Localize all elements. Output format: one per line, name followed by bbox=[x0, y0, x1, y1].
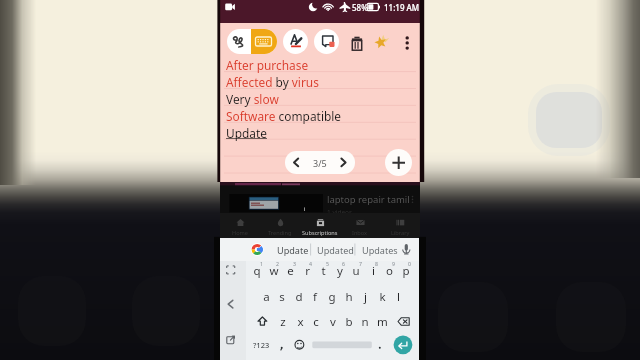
staticText: Home bbox=[232, 229, 248, 237]
staticText: p bbox=[402, 263, 410, 279]
button[interactable]: y bbox=[332, 263, 348, 279]
button[interactable]: Home bbox=[220, 213, 260, 238]
button[interactable]: n bbox=[357, 314, 373, 330]
button[interactable]: g bbox=[324, 289, 340, 305]
button[interactable]: Floating keyboard bbox=[223, 331, 239, 347]
staticText: j bbox=[364, 289, 367, 305]
button[interactable]: b bbox=[341, 314, 357, 330]
button[interactable]: 4 bbox=[302, 255, 318, 271]
staticText: 3/5 bbox=[313, 157, 327, 169]
staticText: q bbox=[253, 263, 261, 279]
button[interactable]: h bbox=[341, 289, 357, 305]
button[interactable]: s bbox=[274, 289, 290, 305]
button[interactable]: z bbox=[275, 314, 291, 330]
staticText: 58% bbox=[352, 2, 368, 13]
staticText: Update bbox=[277, 244, 309, 256]
staticText: h bbox=[345, 289, 353, 305]
button[interactable]: Resize keyboard bbox=[223, 261, 239, 277]
staticText: l bbox=[397, 289, 400, 305]
button[interactable]: r bbox=[299, 263, 315, 279]
staticText: 4 bbox=[309, 260, 312, 267]
staticText: 7 bbox=[359, 260, 362, 267]
staticText: w bbox=[269, 263, 279, 279]
button[interactable]: Inbox bbox=[340, 213, 380, 238]
staticText: i bbox=[372, 263, 375, 279]
staticText: 11:19 AM bbox=[384, 2, 420, 13]
button[interactable]: Back bbox=[223, 296, 239, 312]
button[interactable]: t bbox=[315, 263, 331, 279]
button[interactable]: w bbox=[266, 263, 282, 279]
staticText: After purchase bbox=[226, 57, 309, 73]
button[interactable]: k bbox=[374, 289, 390, 305]
staticText: u bbox=[352, 263, 360, 279]
button[interactable]: More options bbox=[397, 32, 417, 52]
staticText: laptop repair tamil bbox=[327, 193, 410, 206]
staticText: b bbox=[345, 314, 353, 330]
button[interactable]: 7 bbox=[352, 255, 368, 271]
staticText: m bbox=[377, 314, 388, 330]
staticText: 1 bbox=[260, 260, 263, 267]
staticText: x bbox=[297, 314, 304, 330]
button[interactable]: 9 bbox=[385, 255, 401, 271]
staticText: Updates bbox=[362, 244, 398, 256]
staticText: z bbox=[280, 314, 286, 330]
staticText: Inbox bbox=[352, 229, 368, 237]
button[interactable]: x bbox=[292, 314, 308, 330]
button[interactable]: c bbox=[308, 314, 324, 330]
button[interactable]: m bbox=[374, 314, 390, 330]
staticText: Affected by virus bbox=[226, 74, 319, 90]
button[interactable]: 1 bbox=[253, 255, 269, 271]
button[interactable]: 3/5 bbox=[285, 151, 355, 174]
button[interactable]: Trending bbox=[260, 213, 300, 238]
button[interactable]: v bbox=[325, 314, 341, 330]
button[interactable]: ?123 bbox=[249, 337, 273, 353]
button[interactable]: 5 bbox=[319, 255, 335, 271]
button[interactable]: f bbox=[307, 289, 323, 305]
button[interactable]: Library bbox=[380, 213, 420, 238]
button[interactable]: 3 bbox=[286, 255, 302, 271]
staticText: g bbox=[328, 289, 336, 305]
staticText: 8 bbox=[375, 260, 378, 267]
button[interactable]: Updated bbox=[315, 238, 355, 261]
staticText: e bbox=[287, 263, 294, 279]
staticText: 6 bbox=[342, 260, 345, 267]
staticText: t bbox=[321, 263, 326, 279]
button[interactable]: Delete bbox=[347, 32, 367, 52]
button[interactable]: Handwriting bbox=[227, 29, 252, 54]
button[interactable]: j bbox=[357, 289, 373, 305]
button[interactable]: Insert object bbox=[314, 29, 339, 54]
button[interactable]: 2 bbox=[269, 255, 285, 271]
button[interactable]: Keyboard bbox=[251, 29, 277, 54]
staticText: Updated bbox=[317, 244, 354, 256]
staticText: d bbox=[295, 289, 303, 305]
button[interactable]: 8 bbox=[368, 255, 384, 271]
button[interactable]: Subscriptions bbox=[300, 213, 340, 238]
staticText: o bbox=[386, 263, 393, 279]
button[interactable]: Add note bbox=[385, 149, 412, 176]
staticText: 0 bbox=[408, 260, 411, 267]
staticText: r bbox=[305, 263, 310, 279]
staticText: Software compatible bbox=[226, 108, 342, 124]
staticText: Update bbox=[226, 125, 267, 141]
staticText: s bbox=[279, 289, 285, 305]
staticText: v bbox=[330, 314, 336, 330]
button[interactable]: p bbox=[398, 263, 414, 279]
button[interactable]: i bbox=[365, 263, 381, 279]
staticText: a bbox=[263, 289, 270, 305]
button[interactable]: o bbox=[381, 263, 397, 279]
button[interactable]: a bbox=[258, 289, 274, 305]
staticText: y bbox=[337, 263, 343, 279]
button[interactable]: Favorite bbox=[371, 32, 391, 52]
staticText: 5 bbox=[326, 260, 329, 267]
staticText: Very slow bbox=[226, 91, 279, 107]
button[interactable]: Update bbox=[274, 238, 311, 261]
button[interactable]: d bbox=[291, 289, 307, 305]
button[interactable]: q bbox=[249, 263, 265, 279]
button[interactable]: e bbox=[282, 263, 298, 279]
button[interactable]: u bbox=[348, 263, 364, 279]
button[interactable]: Updates bbox=[360, 238, 400, 261]
button[interactable]: 6 bbox=[335, 255, 351, 271]
button[interactable]: Markup pen bbox=[283, 29, 308, 54]
button[interactable]: l bbox=[390, 289, 406, 305]
button[interactable]: 0 bbox=[401, 255, 417, 271]
